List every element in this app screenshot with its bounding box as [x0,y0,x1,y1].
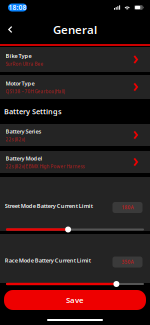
staticText: 18:08 [8,3,26,12]
staticText: QS138 – 70H Gearbox (Hall) [5,88,64,95]
staticText: Save [66,295,84,305]
staticText: Battery Model [5,154,42,162]
staticText: 180A [121,204,133,211]
button[interactable]: Battery Model [0,151,150,173]
button[interactable]: Motor Type [0,75,150,99]
staticText: General [53,22,97,37]
staticText: 22s (82v) EBMX High Power Harness [5,163,84,170]
button[interactable]: Bike Type [0,47,150,72]
button[interactable]: Battery Series [0,124,150,146]
button[interactable]: Back [0,20,18,39]
button[interactable]: Save [4,290,146,310]
staticText: Bike Type [5,52,31,59]
staticText: Battery Settings [4,106,62,116]
staticText: Battery Series [5,127,41,135]
staticText: Street Mode Battery Current Limit [5,202,93,210]
staticText: Race Mode Battery Current Limit [5,256,91,264]
staticText: 350A [121,259,133,265]
staticText: Motor Type [5,79,34,87]
staticText: 22s (82v) [5,136,24,143]
staticText: SurRon Ultra Bee [5,61,43,67]
